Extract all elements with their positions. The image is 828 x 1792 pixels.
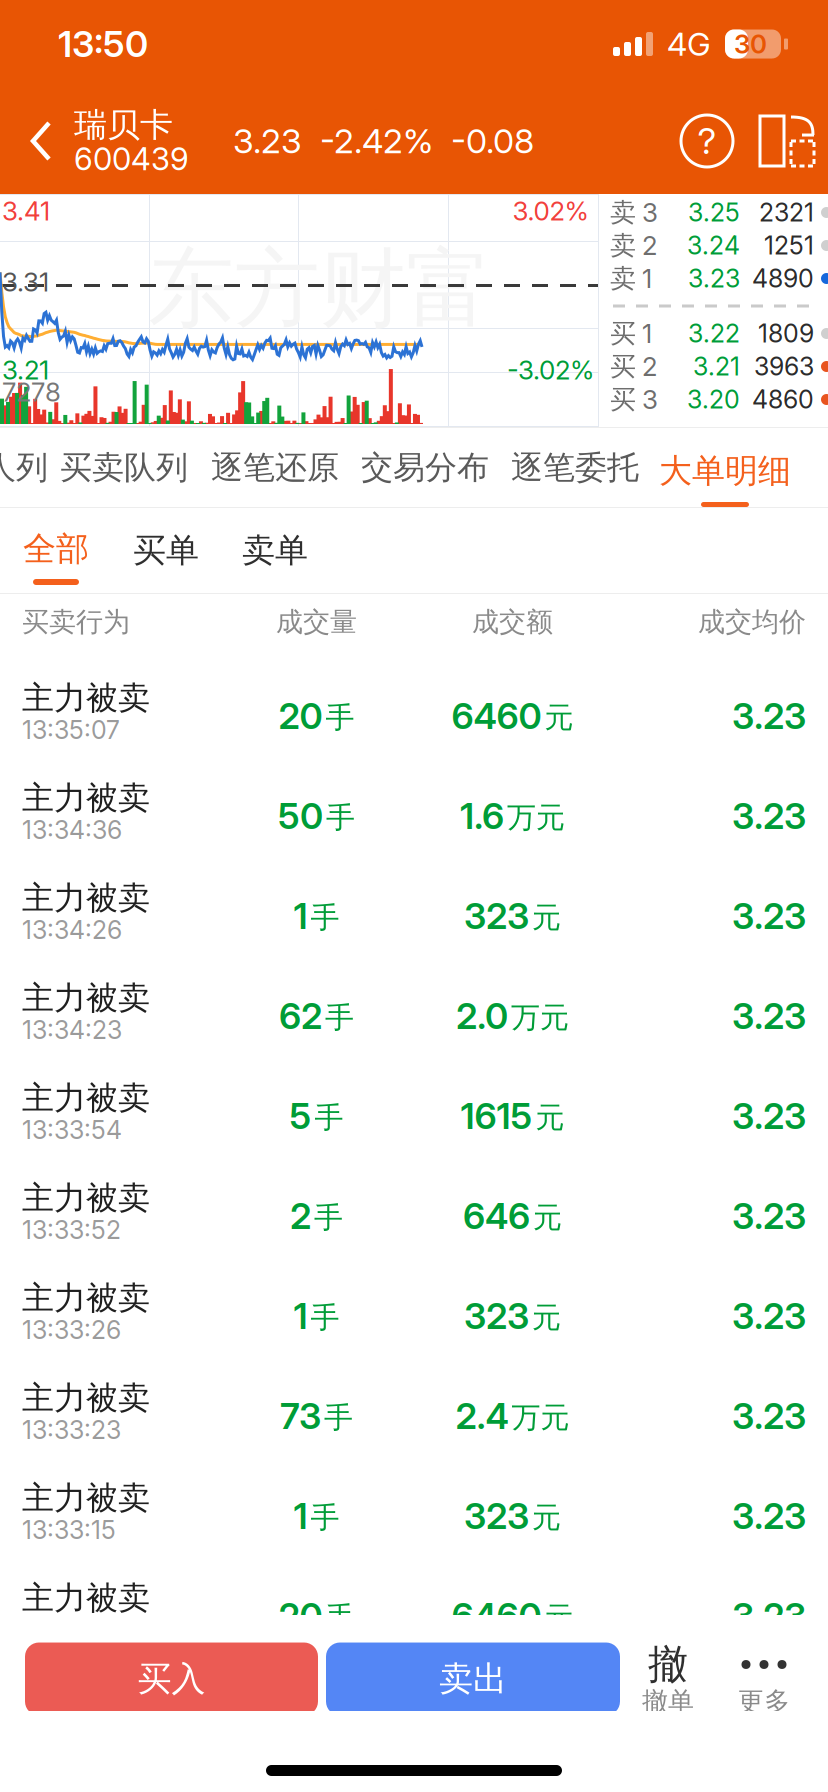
staticText: 主力被卖 [22,1078,150,1118]
button[interactable]: Picture in picture [746,88,828,194]
staticText: 卖出 [439,1658,507,1700]
staticText: 4G [667,25,711,63]
staticText: 万元 [511,1399,569,1436]
staticText: 13:33:52 [22,1215,121,1245]
staticText: 1 [293,894,307,938]
staticText: 全部 [23,528,89,570]
staticText: 13:33:54 [22,1115,122,1145]
staticText: 3.25 [688,197,740,228]
staticText: 主力被卖 [22,1278,150,1318]
staticText: 3.23 [732,994,806,1038]
staticText: 卖 [610,262,636,295]
staticText: 1 [642,318,652,349]
staticText: 买 [610,383,636,416]
staticText: 主力被卖 [22,1478,150,1518]
staticText: 1615 [460,1094,532,1138]
staticText: 323 [464,894,529,938]
staticText: 3.23 [688,263,740,294]
button[interactable]: 人列 [0,428,48,507]
button[interactable]: 主力被卖 [0,1157,828,1257]
staticText: 主力被卖 [22,1578,150,1618]
staticText: 3.41 [2,195,50,227]
staticText: 3963 [754,351,814,382]
staticText: 元 [535,1099,564,1136]
staticText: 73 [280,1394,321,1438]
button[interactable]: 主力被卖 [0,1357,828,1457]
staticText: 2 [642,351,657,382]
staticText: 13:34:23 [22,1015,122,1045]
staticText: 成交额 [472,605,553,639]
staticText: 13:34:36 [22,815,122,845]
button[interactable]: 交易分布 [350,428,500,507]
staticText: 13:33:15 [22,1515,116,1545]
staticText: 更多 [738,1685,790,1718]
staticText: 1.6 [460,794,504,838]
staticText: 3.24 [687,230,740,261]
button[interactable]: 主力被卖 [0,657,828,757]
staticText: 买卖队列 [60,447,188,488]
staticText: 323 [464,1294,529,1338]
button[interactable]: 撤 [620,1636,716,1722]
staticText: 62 [279,994,322,1038]
button[interactable]: 买卖队列 [48,428,200,507]
staticText: 成交均价 [698,605,806,639]
staticText: 撤单 [642,1685,694,1718]
staticText: 3.23 [732,894,806,938]
staticText: 3.23 [732,794,806,838]
button[interactable]: 卖出 [326,1642,620,1715]
staticText: 手 [325,999,354,1036]
staticText: 2 [642,230,657,261]
button[interactable]: 主力被卖 [0,757,828,857]
staticText: 600439 [74,140,189,178]
staticText: 手 [314,1199,343,1236]
button[interactable]: 主力被卖 [0,1557,828,1657]
staticText: 3.22 [688,318,740,349]
staticText: 逐笔委托 [511,447,639,488]
staticText: 3.23 [732,1394,806,1438]
staticText: 3.23 [732,1594,806,1638]
button[interactable]: 买单 [112,508,220,593]
button[interactable]: 买入 [25,1642,318,1715]
button[interactable]: 逐笔委托 [500,428,650,507]
staticText: 元 [532,1299,561,1336]
button[interactable]: 逐笔还原 [200,428,350,507]
staticText: 2.4 [455,1394,508,1438]
staticText: 50 [278,794,323,838]
staticText: 2321 [759,197,814,228]
staticText: 撤 [648,1639,688,1690]
button[interactable]: 主力被卖 [0,1457,828,1557]
staticText: 20 [278,694,322,738]
button[interactable]: Back [0,88,74,194]
staticText: 主力被卖 [22,678,150,718]
staticText: 2.0 [456,994,508,1038]
button[interactable]: 主力被卖 [0,1057,828,1157]
button[interactable]: 全部 [0,508,112,593]
staticText: 1 [293,1494,307,1538]
staticText: 7278 [2,376,61,408]
staticText: 6460 [451,1594,541,1638]
staticText: 646 [463,1194,530,1238]
staticText: 1 [642,263,652,294]
staticText: 13:33:23 [22,1415,121,1445]
staticText: 买卖行为 [22,605,130,639]
staticText: 卖 [610,229,636,262]
staticText: 2 [290,1194,311,1238]
staticText: 1809 [758,318,814,349]
staticText: 万元 [511,999,569,1036]
button[interactable]: Help [668,88,746,194]
staticText: 元 [533,1199,562,1236]
staticText: 13:50 [58,22,148,66]
staticText: 东方财富 [148,235,492,343]
staticText: 3.21 [2,354,49,386]
staticText: 3.02% [512,195,588,227]
button[interactable]: 主力被卖 [0,957,828,1057]
staticText: 5 [289,1094,311,1138]
staticText: 4860 [752,384,814,415]
button[interactable]: 大单明细 [650,428,800,507]
button[interactable]: 主力被卖 [0,1257,828,1357]
staticText: 人列 [0,447,48,488]
button[interactable]: 主力被卖 [0,857,828,957]
staticText: 手 [326,799,355,836]
button[interactable]: 卖单 [220,508,330,593]
button[interactable]: 更多 [716,1636,812,1722]
